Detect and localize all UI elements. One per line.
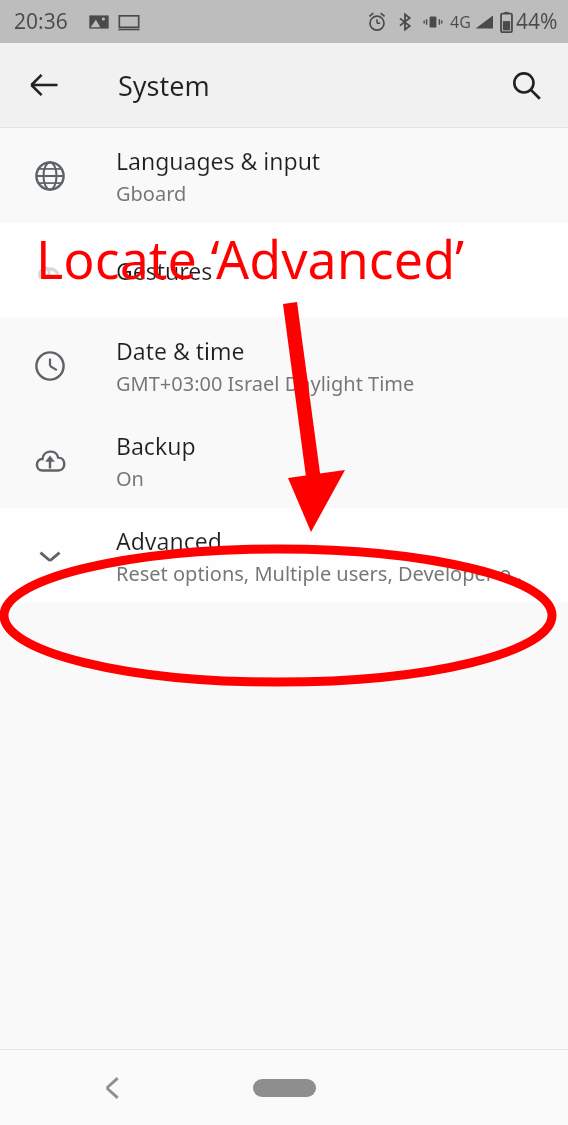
button[interactable]: Back xyxy=(85,1060,141,1116)
button[interactable]: Search xyxy=(500,59,552,111)
button[interactable]: Date & time xyxy=(0,318,568,413)
staticText: Backup xyxy=(116,430,196,461)
staticText: Languages & input xyxy=(116,145,321,176)
staticText: System xyxy=(118,67,210,104)
button[interactable]: Advanced xyxy=(0,508,568,603)
staticText: Reset options, Multiple users, Developer… xyxy=(116,560,523,587)
staticText: Locate ‘Advanced’ xyxy=(36,223,465,294)
staticText: Advanced xyxy=(116,525,222,556)
staticText: GMT+03:00 Israel Daylight Time xyxy=(116,370,415,397)
staticText: Date & time xyxy=(116,335,245,366)
staticText: On xyxy=(116,465,144,492)
button[interactable]: Gestures xyxy=(0,223,568,318)
button[interactable]: Home xyxy=(239,1068,329,1108)
button[interactable]: Languages & input xyxy=(0,128,568,223)
staticText: Gestures xyxy=(116,255,213,286)
button[interactable]: Backup xyxy=(0,413,568,508)
staticText: 44% xyxy=(516,7,558,36)
button[interactable]: Back xyxy=(18,59,70,111)
staticText: Gboard xyxy=(116,180,187,207)
staticText: 20:36 xyxy=(14,7,68,36)
staticText: 4G xyxy=(450,11,471,33)
